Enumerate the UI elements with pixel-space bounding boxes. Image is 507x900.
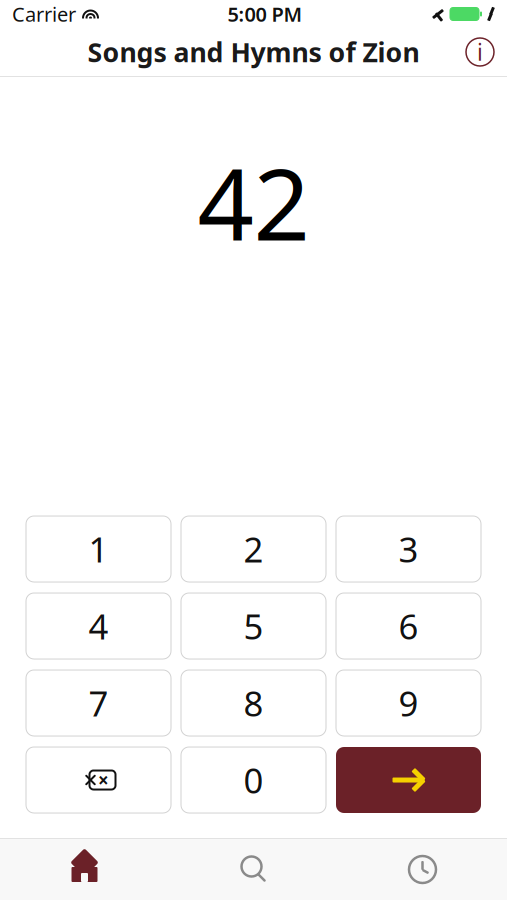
button[interactable]: Delete xyxy=(26,747,171,813)
button[interactable]: 8 xyxy=(181,670,326,736)
staticText: 4 xyxy=(88,603,108,649)
staticText: 9 xyxy=(398,680,418,726)
button[interactable]: History xyxy=(338,839,507,900)
staticText: 6 xyxy=(398,603,418,649)
button[interactable]: 0 xyxy=(181,747,326,813)
button[interactable]: 6 xyxy=(336,593,481,659)
staticText: 8 xyxy=(243,680,263,726)
button[interactable]: 9 xyxy=(336,670,481,736)
button[interactable]: Home xyxy=(0,839,169,900)
staticText: 3 xyxy=(398,526,418,572)
staticText: Songs and Hymns of Zion xyxy=(87,34,419,70)
button[interactable]: 2 xyxy=(181,516,326,582)
button[interactable]: 3 xyxy=(336,516,481,582)
staticText: i xyxy=(477,37,483,67)
button[interactable]: Go xyxy=(336,747,481,813)
button[interactable]: Search xyxy=(169,839,338,900)
button[interactable]: 4 xyxy=(26,593,171,659)
staticText: × xyxy=(98,768,109,792)
button[interactable]: 1 xyxy=(26,516,171,582)
staticText: 7 xyxy=(88,680,108,726)
staticText: 42 xyxy=(197,135,309,269)
button[interactable]: 7 xyxy=(26,670,171,736)
staticText: 5 xyxy=(243,603,263,649)
staticText: 0 xyxy=(243,757,263,803)
staticText: 2 xyxy=(243,526,263,572)
staticText: 5:00 PM xyxy=(227,1,302,27)
staticText: Carrier xyxy=(12,1,76,27)
staticText: 1 xyxy=(88,526,108,572)
button[interactable]: Information xyxy=(453,28,507,76)
button[interactable]: 5 xyxy=(181,593,326,659)
